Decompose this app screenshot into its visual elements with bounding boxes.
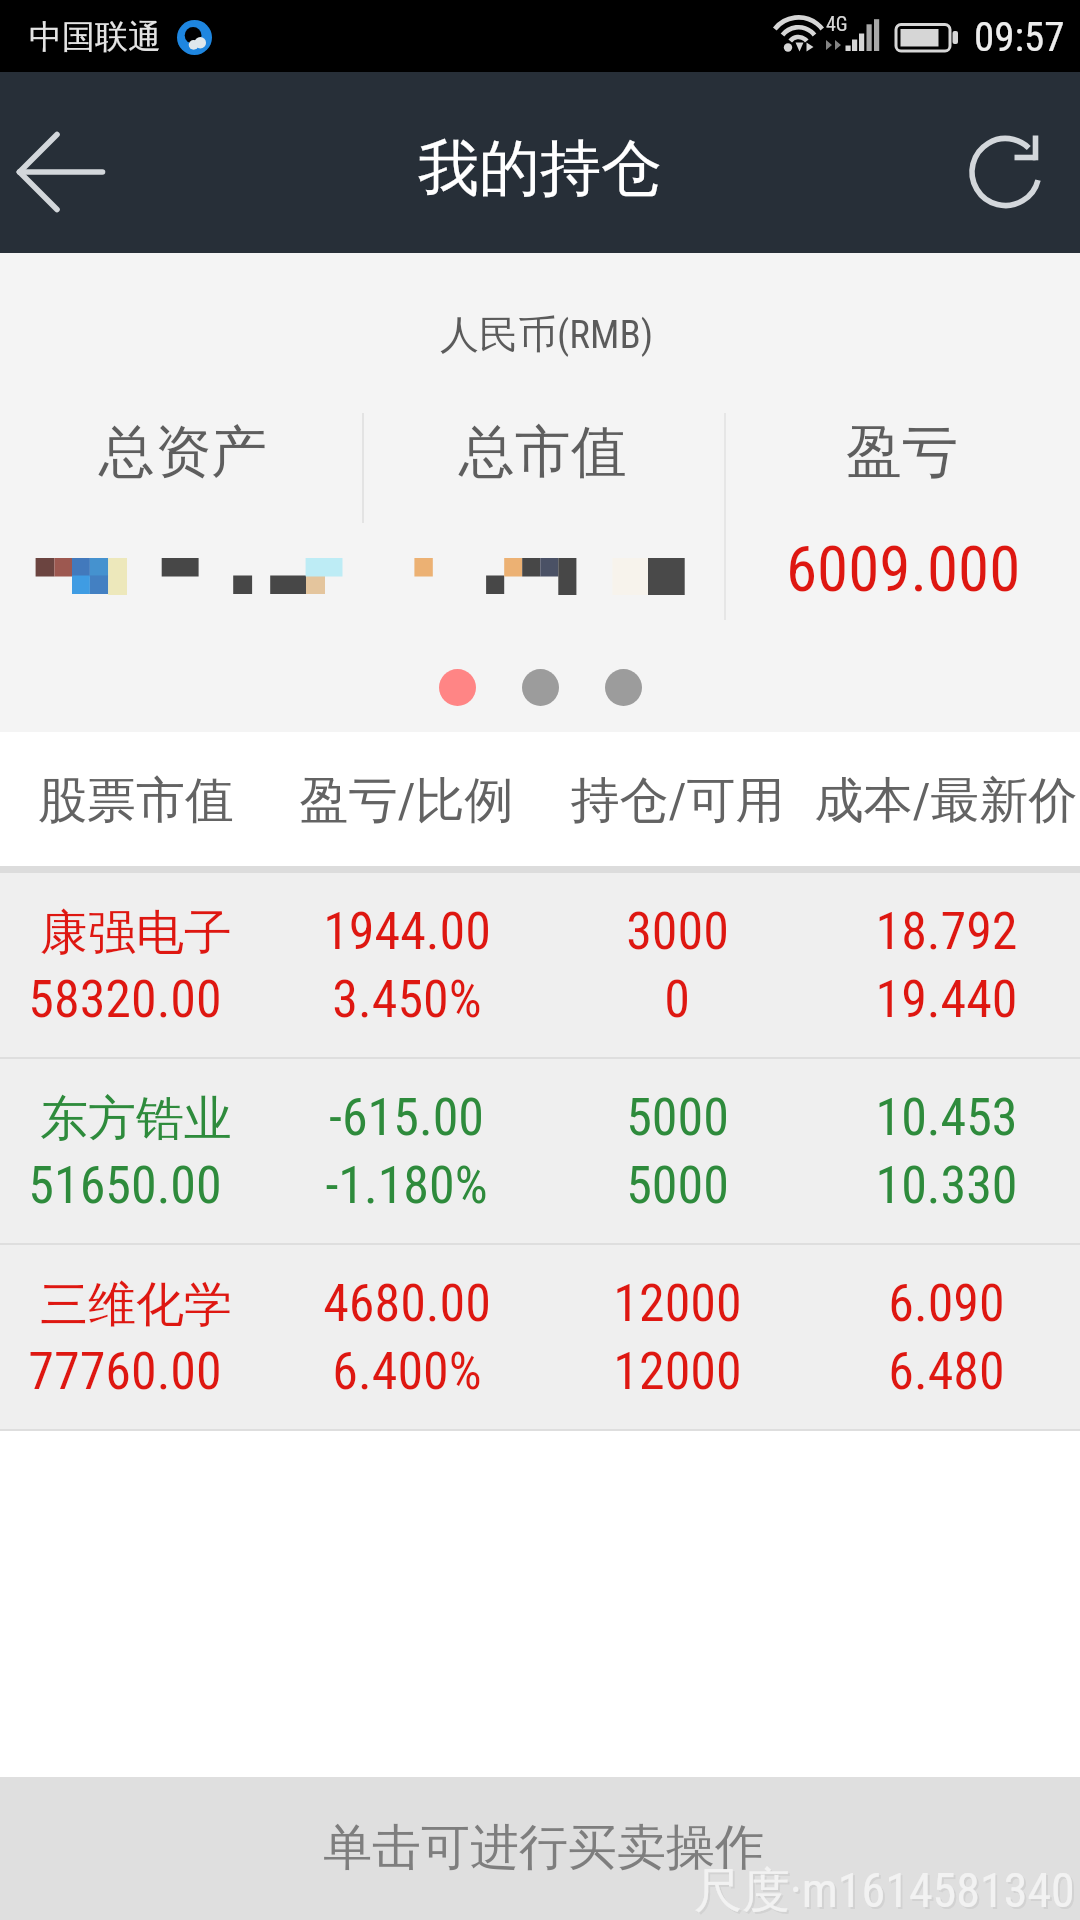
staticText: -1.180% xyxy=(325,1155,488,1216)
button[interactable]: 人民币(RMB) xyxy=(0,253,1080,732)
staticText: 5000 xyxy=(626,1087,729,1148)
staticText: 盈亏 xyxy=(846,417,958,488)
staticText: 58320.00 xyxy=(28,969,222,1030)
staticText: 单击可进行买卖操作 xyxy=(323,1817,764,1879)
button[interactable]: 三维化学 xyxy=(0,1245,1080,1429)
staticText: 股票市值 xyxy=(38,770,234,832)
button[interactable]: Page 1 xyxy=(439,669,476,706)
staticText: 18.792 xyxy=(875,901,1018,962)
staticText: 东方锆业 xyxy=(40,1089,232,1149)
staticText: 6009.000 xyxy=(786,533,1021,603)
button[interactable]: 东方锆业 xyxy=(0,1059,1080,1243)
staticText: 0 xyxy=(664,969,690,1030)
button[interactable]: Page 2 xyxy=(522,669,559,706)
button[interactable]: Refresh xyxy=(950,102,1080,242)
staticText: 成本/最新价 xyxy=(814,770,1078,832)
staticText: 10.330 xyxy=(875,1155,1018,1216)
staticText: -615.00 xyxy=(329,1087,484,1148)
staticText: 6.400% xyxy=(332,1341,482,1402)
staticText: 人民币(RMB) xyxy=(440,310,654,359)
staticText: 5000 xyxy=(626,1155,729,1216)
staticText: 12000 xyxy=(613,1273,742,1334)
staticText: 持仓/可用 xyxy=(570,770,785,832)
staticText: 19.440 xyxy=(875,969,1018,1030)
staticText: 10.453 xyxy=(875,1087,1018,1148)
staticText: 51650.00 xyxy=(28,1155,222,1216)
staticText: 康强电子 xyxy=(40,903,232,963)
staticText: 尺度·m1614581340 xyxy=(694,1861,1075,1920)
staticText: 中国联通 xyxy=(29,16,161,58)
staticText: 三维化学 xyxy=(40,1275,232,1335)
staticText: 12000 xyxy=(613,1341,742,1402)
button[interactable]: 康强电子 xyxy=(0,873,1080,1057)
staticText: 6.090 xyxy=(888,1273,1005,1334)
staticText: 09:57 xyxy=(974,13,1065,61)
button[interactable]: Back xyxy=(0,102,125,242)
staticText: 1944.00 xyxy=(323,901,491,962)
staticText: 总资产 xyxy=(99,417,267,488)
staticText: 尺度·m1614581340 xyxy=(696,1863,1077,1920)
staticText: 盈亏/比例 xyxy=(299,770,514,832)
staticText: 77760.00 xyxy=(28,1341,222,1402)
staticText: 6.480 xyxy=(888,1341,1005,1402)
button[interactable]: Page 3 xyxy=(605,669,642,706)
staticText: 4680.00 xyxy=(323,1273,491,1334)
staticText: 3.450% xyxy=(332,969,482,1030)
staticText: 总市值 xyxy=(459,417,627,488)
staticText: 我的持仓 xyxy=(418,130,662,207)
staticText: 3000 xyxy=(626,901,729,962)
staticText: 4G xyxy=(826,12,848,35)
button[interactable]: 单击可进行买卖操作 xyxy=(0,1777,1080,1920)
